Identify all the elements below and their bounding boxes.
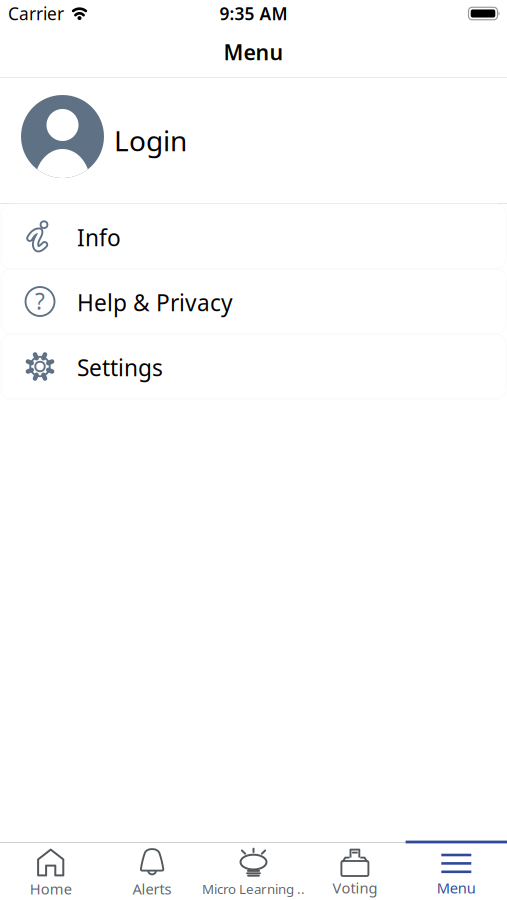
staticText: Menu <box>437 878 476 897</box>
button[interactable]: Login <box>0 78 507 203</box>
staticText: Home <box>30 879 72 898</box>
staticText: 9:35 AM <box>219 2 287 25</box>
staticText: Help & Privacy <box>77 287 233 317</box>
button[interactable]: Info <box>0 204 507 269</box>
button[interactable]: ? <box>0 269 507 334</box>
staticText: ? <box>35 286 45 316</box>
staticText: Micro Learning .. <box>202 880 305 898</box>
button[interactable]: Settings <box>0 334 507 399</box>
staticText: Settings <box>77 352 163 382</box>
button[interactable]: Menu <box>406 848 507 897</box>
staticText: Login <box>114 122 187 159</box>
button[interactable]: Voting <box>304 848 406 897</box>
button[interactable]: Micro Learning .. <box>203 848 304 898</box>
staticText: Menu <box>223 38 283 66</box>
button[interactable]: Alerts <box>101 847 203 898</box>
button[interactable]: Home <box>0 847 101 898</box>
staticText: Carrier <box>8 2 64 25</box>
staticText: Alerts <box>133 879 172 898</box>
staticText: Info <box>77 222 121 252</box>
staticText: Voting <box>332 878 377 897</box>
